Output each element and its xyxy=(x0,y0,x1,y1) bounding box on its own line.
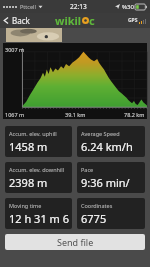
staticText: 6.24 km/h xyxy=(81,139,133,154)
staticText: Moving time xyxy=(9,202,42,209)
staticText: Pace xyxy=(81,166,94,173)
button[interactable]: Coordinates xyxy=(77,198,145,229)
staticText: 6775 xyxy=(81,211,107,226)
staticText: %30 xyxy=(122,3,134,11)
button[interactable]: Pace xyxy=(77,162,145,193)
staticText: 39.1 km xyxy=(65,111,86,118)
staticText: 3007 m xyxy=(5,46,25,53)
staticText: Accum. elev. downhill xyxy=(9,166,65,173)
staticText: wikil xyxy=(55,13,82,28)
staticText: 12 h 31 m 6 s xyxy=(9,211,70,226)
staticText: Coordinates xyxy=(81,202,113,209)
staticText: 78.2 km xyxy=(124,111,145,118)
staticText: 22:13 xyxy=(70,2,87,11)
button[interactable]: Accum. elev. uphill xyxy=(5,126,72,157)
button[interactable]: GPS signal xyxy=(125,15,150,26)
staticText: 1458 m xyxy=(9,139,48,154)
button[interactable]: Average Speed xyxy=(77,126,145,157)
staticText: Accum. elev. uphill xyxy=(9,130,57,137)
button[interactable]: Send file xyxy=(5,234,145,250)
staticText: Average Speed xyxy=(81,130,120,137)
staticText: GPS xyxy=(128,17,138,24)
button[interactable]: Accum. elev. downhill xyxy=(5,162,72,193)
staticText: c xyxy=(89,13,95,28)
button[interactable]: Back xyxy=(0,13,34,28)
staticText: 2398 m xyxy=(9,175,48,190)
staticText: 9:36 min/km xyxy=(81,175,143,190)
staticText: Pttcell xyxy=(20,3,36,10)
button[interactable]: Track map thumbnail xyxy=(6,28,62,42)
button[interactable]: Moving time xyxy=(5,198,72,229)
staticText: Send file xyxy=(57,236,94,248)
staticText: 1067 m xyxy=(5,111,25,118)
staticText: Back xyxy=(12,15,30,26)
